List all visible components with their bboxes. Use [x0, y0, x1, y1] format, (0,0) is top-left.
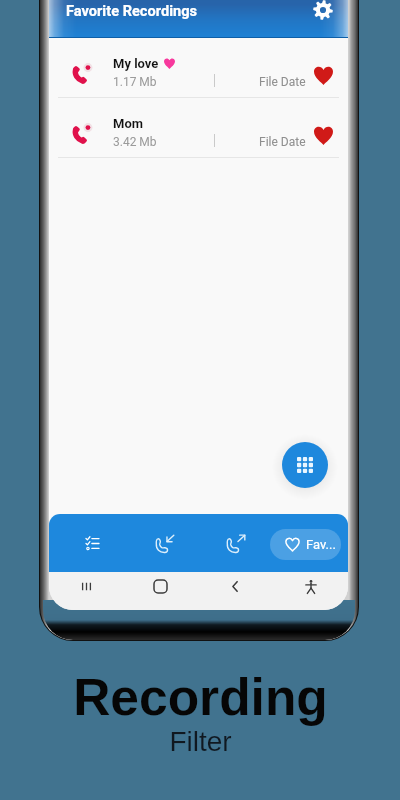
staticText: Recording: [73, 668, 328, 726]
staticText: Mom: [113, 116, 143, 131]
button[interactable]: Back: [198, 572, 273, 601]
button[interactable]: Fav...: [270, 529, 341, 560]
staticText: My love: [113, 56, 159, 71]
button[interactable]: Home: [123, 572, 198, 601]
button[interactable]: Dialpad: [282, 442, 328, 488]
button[interactable]: Incoming calls: [141, 514, 187, 572]
button[interactable]: Favorite: [310, 62, 337, 89]
button[interactable]: Favorite: [310, 122, 337, 149]
button[interactable]: Recents: [49, 572, 123, 601]
staticText: File Date: [259, 75, 306, 89]
staticText: Filter: [169, 726, 232, 757]
button[interactable]: All recordings: [70, 514, 115, 572]
button[interactable]: Settings: [310, 0, 336, 23]
button[interactable]: Mom: [49, 98, 348, 158]
button[interactable]: Accessibility: [273, 572, 348, 601]
button[interactable]: Outgoing calls: [213, 514, 258, 572]
staticText: File Date: [259, 135, 306, 149]
staticText: Favorite Recordings: [66, 2, 198, 19]
staticText: Fav...: [306, 537, 336, 552]
staticText: 1.17 Mb: [113, 75, 157, 89]
button[interactable]: My love: [49, 38, 348, 98]
staticText: 3.42 Mb: [113, 135, 157, 149]
